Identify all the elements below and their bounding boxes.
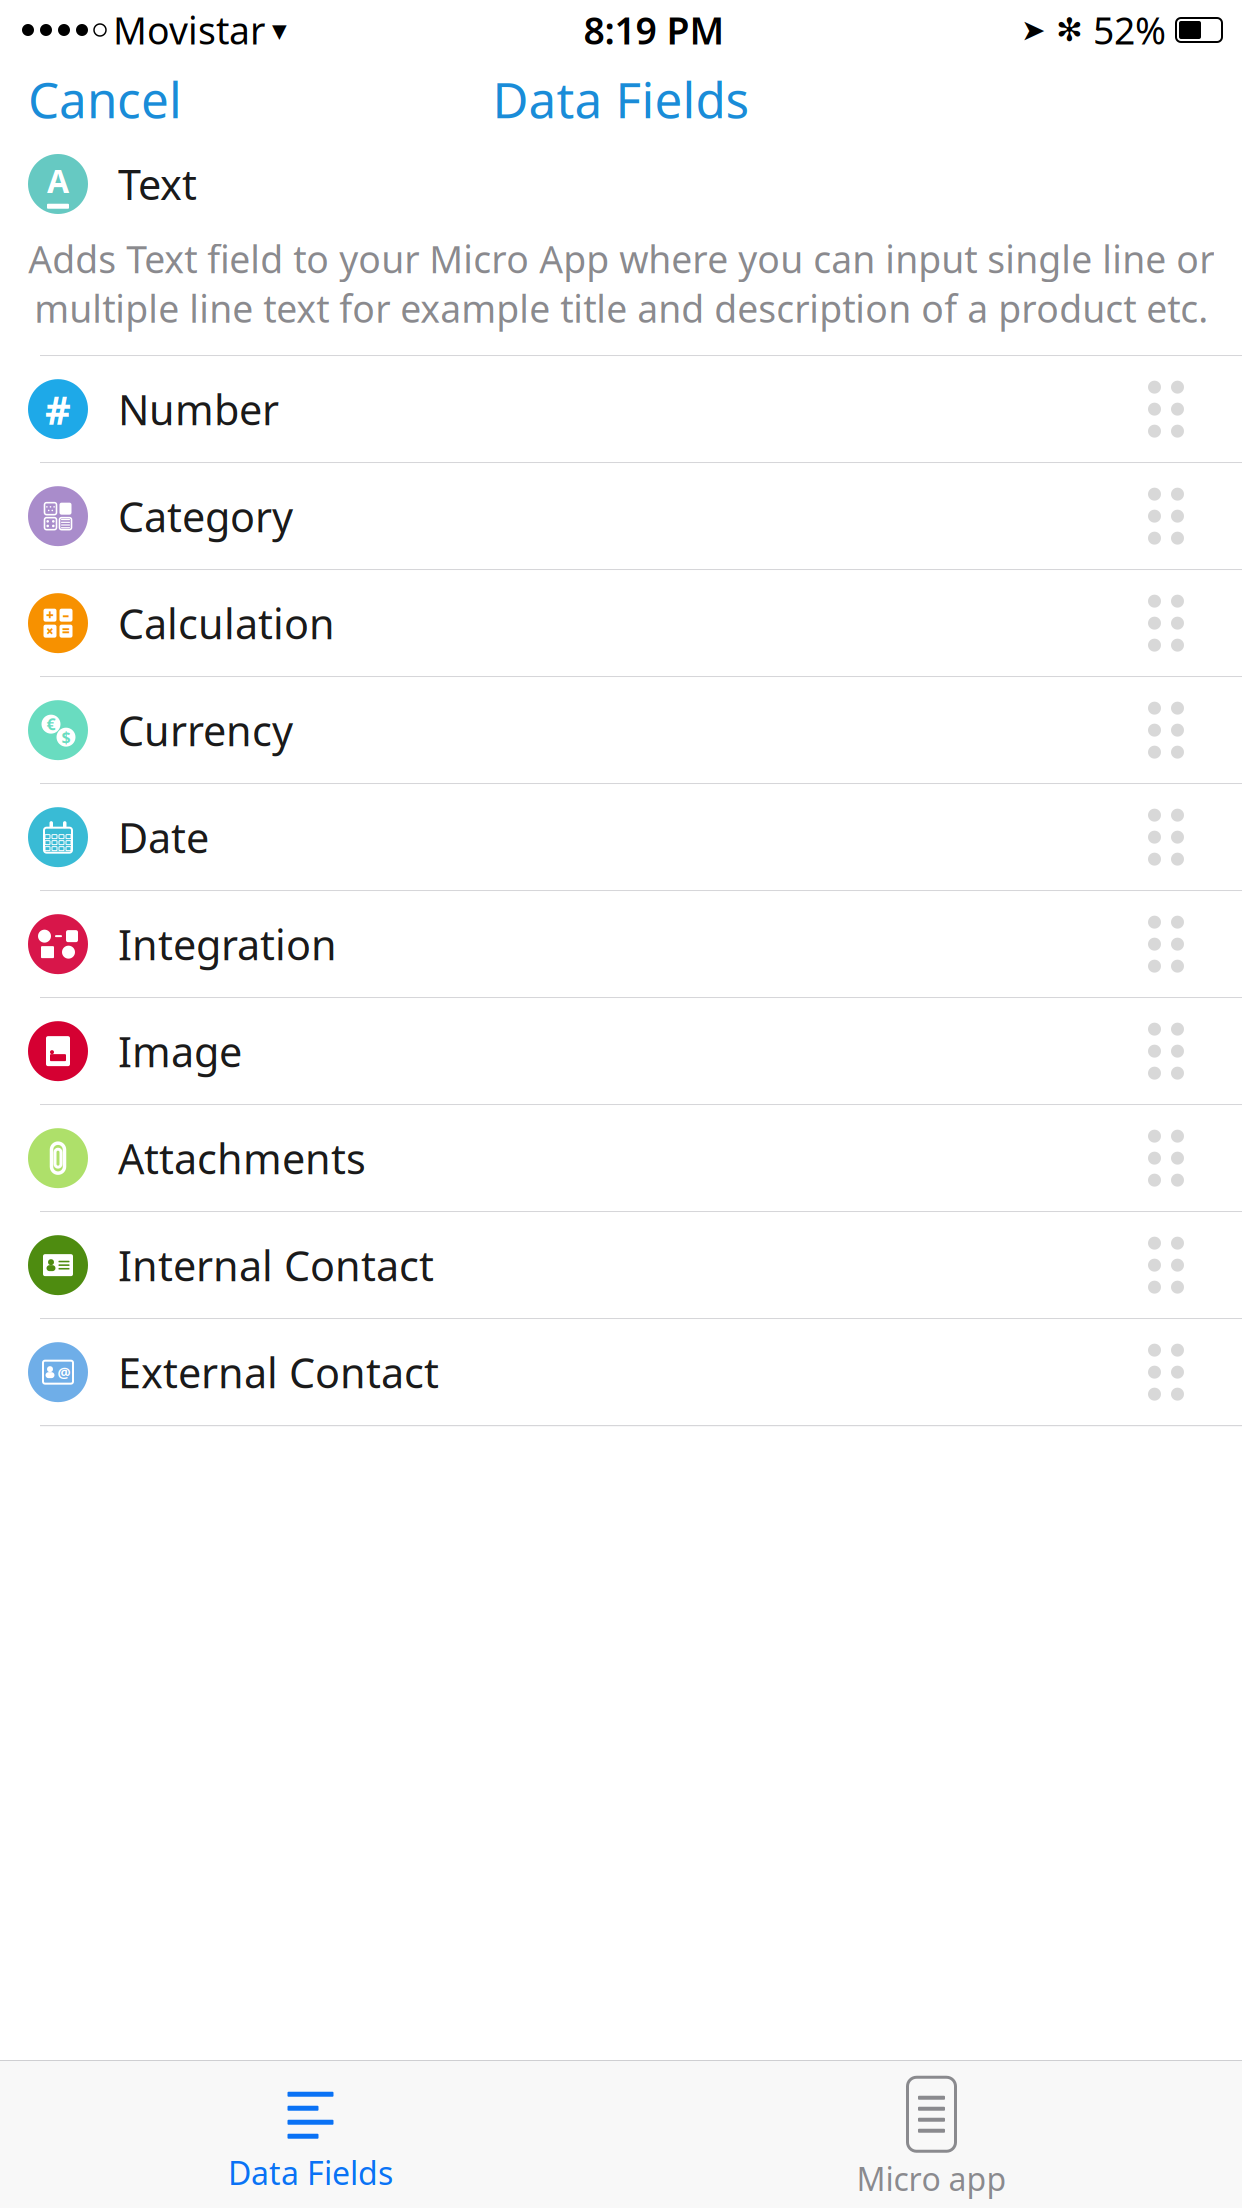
button[interactable]: # (0, 356, 1242, 463)
staticText: $ (61, 726, 70, 748)
staticText: # (45, 383, 71, 436)
staticText: ➤ (1021, 13, 1046, 47)
button[interactable]: Internal Contact (0, 1212, 1242, 1319)
staticText: × (46, 622, 54, 640)
staticText: Calculation (118, 596, 335, 651)
staticText: + (46, 606, 54, 624)
button[interactable]: Integration (0, 891, 1242, 998)
staticText: Cancel (28, 66, 182, 132)
staticText: Micro app (856, 2157, 1006, 2200)
staticText: A (47, 159, 69, 202)
staticText: ▾ (272, 13, 287, 47)
staticText: Attachments (118, 1131, 366, 1186)
staticText: = (62, 622, 70, 640)
staticText: Internal Contact (118, 1238, 434, 1293)
staticText: Date (118, 810, 209, 865)
staticText: Movistar (113, 5, 265, 55)
staticText: Image (118, 1024, 242, 1079)
staticText: Integration (118, 917, 337, 972)
staticText: 52% (1093, 5, 1166, 55)
staticText: Category (118, 489, 293, 544)
button[interactable]: Data Fields (0, 2075, 621, 2194)
button[interactable]: Image (0, 998, 1242, 1105)
button[interactable]: Cancel (0, 56, 210, 142)
button[interactable]: € (0, 677, 1242, 784)
button[interactable]: A (0, 138, 1242, 230)
staticText: Data Fields (492, 66, 749, 132)
staticText: External Contact (118, 1345, 439, 1400)
staticText: Data Fields (228, 2151, 393, 2194)
button[interactable]: + (0, 570, 1242, 677)
staticText: ✻ (1056, 12, 1083, 48)
button[interactable]: Date (0, 784, 1242, 891)
staticText: @ (57, 1362, 70, 1382)
staticText: Text (118, 157, 197, 211)
staticText: Adds Text field to your Micro App where … (28, 234, 1214, 333)
button[interactable]: Micro app (621, 2069, 1242, 2200)
button[interactable]: Category (0, 463, 1242, 570)
button[interactable]: @ (0, 1319, 1242, 1426)
staticText: Currency (118, 703, 293, 758)
button[interactable]: Attachments (0, 1105, 1242, 1212)
staticText: € (46, 713, 55, 735)
staticText: 8:19 PM (583, 5, 724, 55)
staticText: – (62, 606, 69, 624)
staticText: Number (118, 382, 279, 437)
